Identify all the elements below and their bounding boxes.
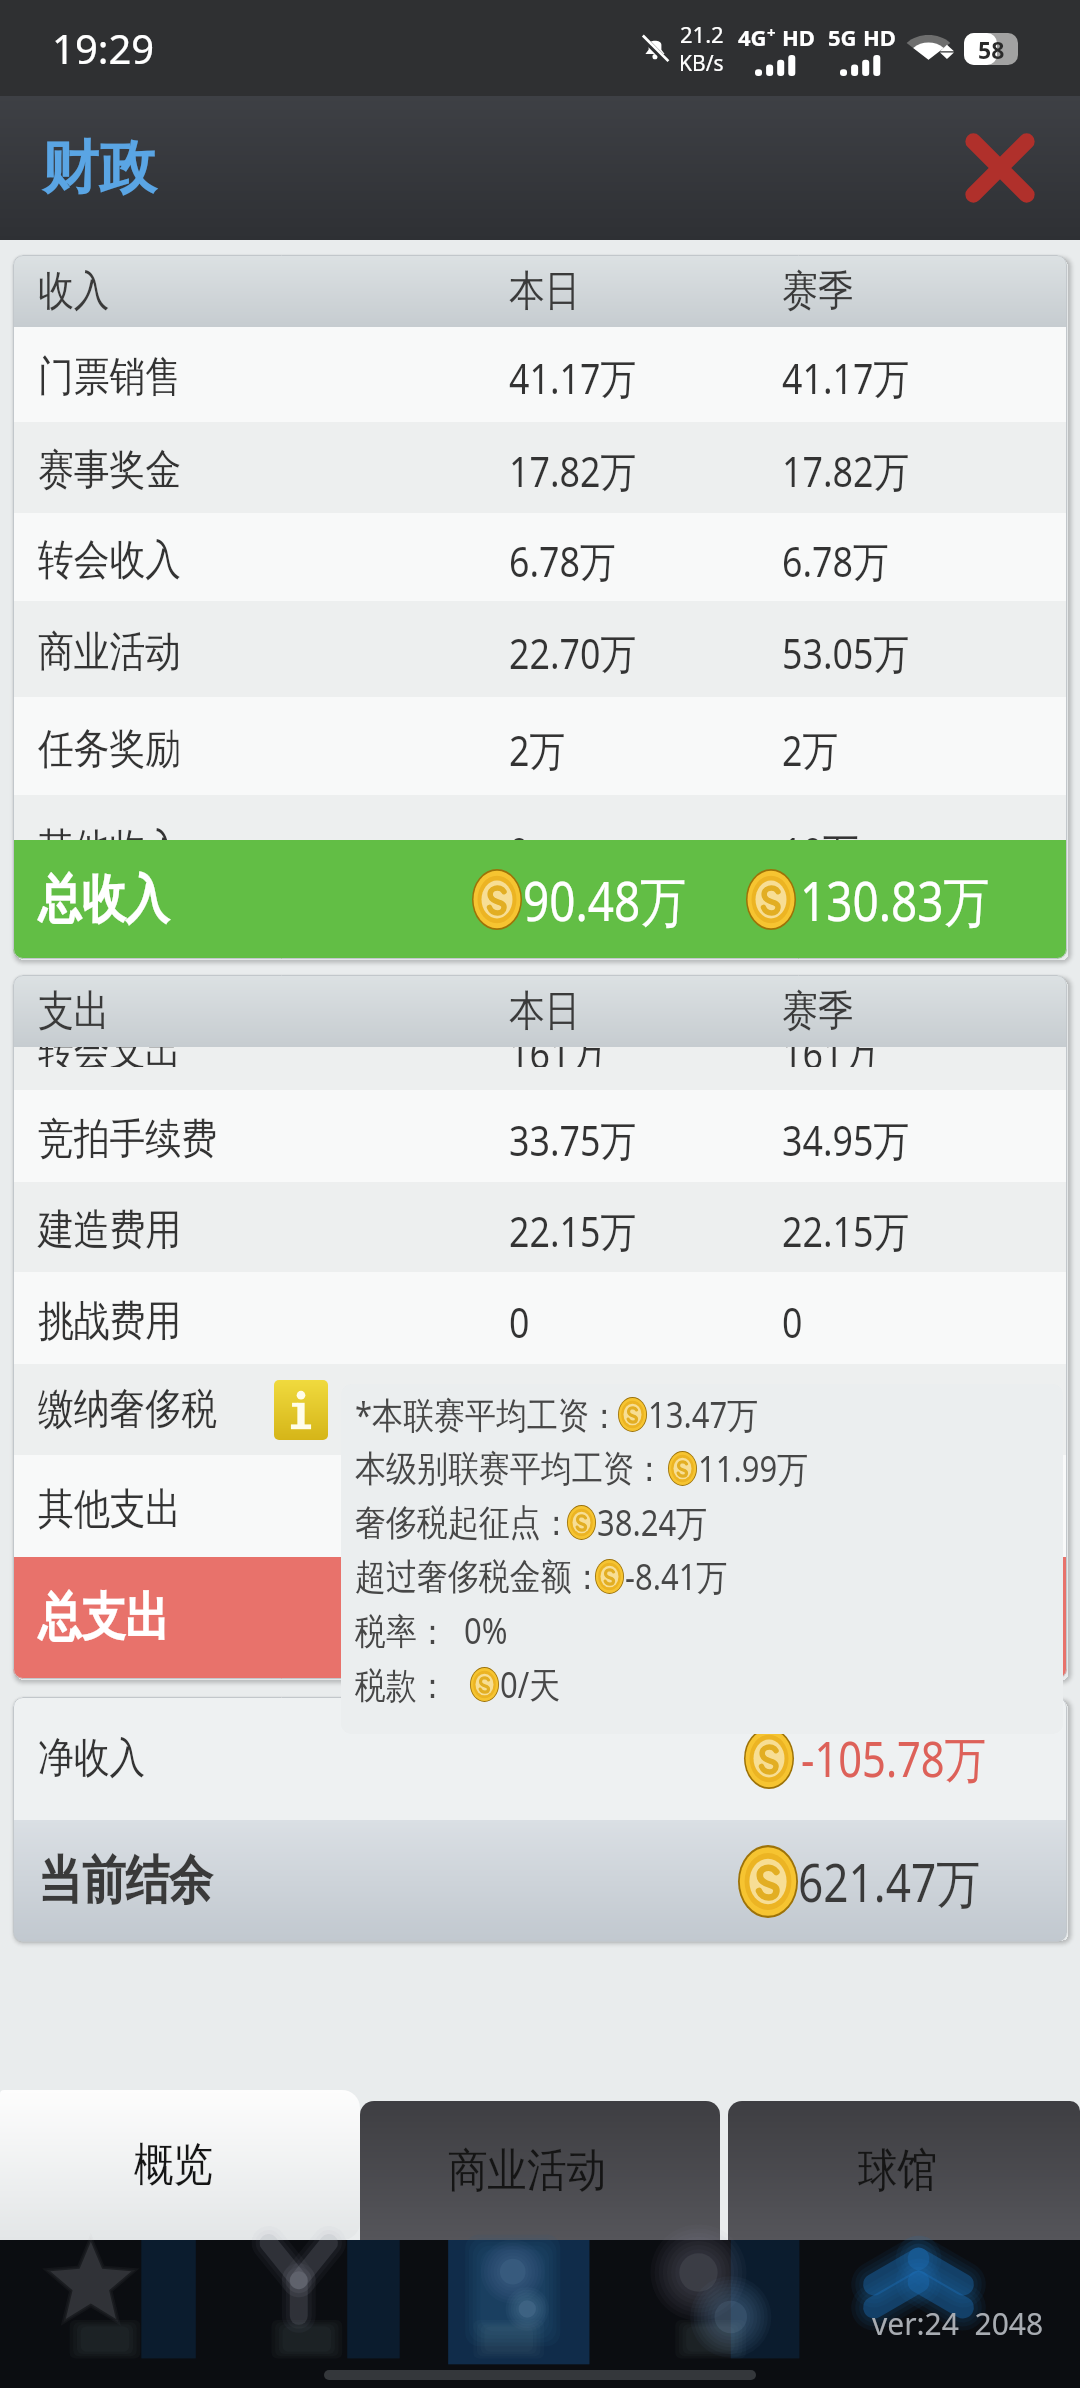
staticText: 34.95万 [782, 1111, 910, 1168]
staticText: 13.47万 [648, 1390, 759, 1439]
staticText: 门票销售 [38, 351, 181, 404]
staticText: 33.75万 [509, 1111, 637, 1168]
button[interactable]: 净收入 [13, 1697, 1067, 1820]
staticText: 商业活动 [38, 626, 181, 679]
staticText: 本日 [509, 985, 581, 1038]
button[interactable]: 竞拍手续费 [13, 1090, 1067, 1182]
staticText: HD [782, 22, 815, 52]
staticText: *本联赛平均工资： [355, 1390, 620, 1439]
staticText: 6.78万 [782, 532, 889, 589]
staticText: 商业活动 [448, 2142, 606, 2200]
button[interactable]: 门票销售 [13, 327, 1067, 422]
staticText: 161万 [782, 1047, 880, 1067]
staticText: 赛季 [782, 985, 854, 1038]
staticText: 奢侈税起征点： [355, 1500, 572, 1545]
staticText: 161万 [509, 1047, 607, 1067]
staticText: 2万 [509, 721, 566, 778]
staticText: 建造费用 [38, 1204, 181, 1257]
staticText: 90.48万 [523, 863, 687, 937]
staticText: 收入 [38, 265, 110, 318]
button[interactable]: 概览 [0, 2090, 360, 2240]
staticText: + [767, 22, 776, 42]
staticText: 球馆 [858, 2142, 937, 2200]
button[interactable]: 当前结余 [13, 1820, 1067, 1942]
staticText: 净收入 [38, 1732, 145, 1785]
staticText: 41.17万 [782, 349, 910, 406]
staticText: 转会支出 [38, 1047, 181, 1067]
staticText: 当前结余 [38, 1848, 213, 1914]
staticText: 19:29 [52, 21, 155, 75]
button[interactable]: Info [274, 1380, 328, 1440]
staticText: 税率： 0% [355, 1606, 508, 1655]
button[interactable]: *本联赛平均工资： [341, 1384, 1063, 1734]
staticText: KB/s [679, 49, 724, 78]
staticText: 53.05万 [782, 624, 910, 681]
staticText: ver:24 2048 [872, 2303, 1044, 2344]
staticText: 其他支出 [38, 1483, 181, 1536]
button[interactable]: 商业活动 [360, 2101, 720, 2240]
staticText: 2万 [782, 721, 839, 778]
staticText: 赛季 [782, 265, 854, 318]
staticText: 总支出 [38, 1585, 169, 1651]
staticText: 财政 [42, 132, 156, 204]
button[interactable]: 缴纳奢侈税 [13, 1364, 1067, 1455]
staticText: -8.41万 [625, 1552, 728, 1601]
staticText: 缴纳奢侈税 [38, 1383, 217, 1436]
staticText: HD [863, 22, 896, 52]
button[interactable]: 任务奖励 [13, 697, 1067, 795]
staticText: 任务奖励 [38, 723, 181, 776]
staticText: 4G [738, 22, 767, 52]
staticText: 11.99万 [698, 1444, 809, 1493]
staticText: 5G [828, 22, 857, 52]
button[interactable]: 挑战费用 [13, 1272, 1067, 1364]
staticText: 概览 [134, 2136, 213, 2194]
button[interactable]: 商业活动 [13, 601, 1067, 697]
staticText: 6.78万 [509, 532, 616, 589]
button[interactable]: 其他支出 [13, 1455, 1067, 1557]
staticText: 10万 [782, 823, 859, 840]
staticText: 总收入 [38, 867, 169, 933]
staticText: 0/天 [500, 1660, 560, 1709]
staticText: 621.47万 [798, 1846, 981, 1917]
button[interactable]: 总收入 [13, 840, 1067, 959]
staticText: 0 [509, 823, 530, 840]
button[interactable]: 总支出 [13, 1557, 1067, 1679]
staticText: 赛事奖金 [38, 444, 181, 497]
button[interactable]: 建造费用 [13, 1182, 1067, 1272]
staticText: 17.82万 [782, 442, 910, 499]
staticText: 22.70万 [509, 624, 637, 681]
staticText: 22.15万 [782, 1202, 910, 1259]
staticText: 21.2 [680, 19, 724, 49]
button[interactable]: 球馆 [728, 2101, 1080, 2240]
staticText: 其他收入 [38, 823, 181, 840]
button[interactable]: 转会收入 [13, 513, 1067, 601]
staticText: 0 [782, 1293, 803, 1350]
staticText: 本日 [509, 265, 581, 318]
staticText: 税款： [355, 1660, 473, 1709]
staticText: 38.24万 [597, 1498, 708, 1547]
staticText: -105.78万 [801, 1725, 987, 1792]
staticText: 17.82万 [509, 442, 637, 499]
staticText: 超过奢侈税金额： [355, 1554, 603, 1599]
other: Navigation bar [0, 2240, 1080, 2388]
staticText: 58 [978, 34, 1005, 65]
staticText: 支出 [38, 985, 110, 1038]
staticText: 转会收入 [38, 534, 181, 587]
staticText: 130.83万 [800, 863, 989, 937]
staticText: 41.17万 [509, 349, 637, 406]
staticText: 竞拍手续费 [38, 1113, 217, 1166]
button[interactable]: 转会支出 [13, 1047, 1067, 1090]
staticText: 本级别联赛平均工资： [355, 1446, 665, 1491]
staticText: 0 [509, 1293, 530, 1350]
button[interactable]: 其他收入 [13, 795, 1067, 840]
staticText: 挑战费用 [38, 1295, 181, 1348]
button[interactable]: Close [958, 126, 1042, 210]
staticText: 22.15万 [509, 1202, 637, 1259]
button[interactable]: 赛事奖金 [13, 422, 1067, 513]
